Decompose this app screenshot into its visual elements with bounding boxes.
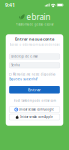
staticText: Endereço de e-mail (11, 55, 38, 58)
button[interactable]: Senha (9, 63, 60, 68)
staticText: Você também pode entrar com (13, 99, 55, 102)
staticText: Plataforma de gestão escolar (15, 23, 53, 26)
staticText: ebrain (26, 11, 50, 22)
staticText: 9:41 (5, 1, 15, 9)
staticText: Iniciar sessão com Google (19, 108, 54, 111)
button[interactable]: Esqueceu sua senha? (9, 77, 37, 81)
staticText: Esqueceu sua senha? (9, 77, 37, 81)
staticText: Iniciar sessão com Apple (20, 115, 53, 119)
staticText: Memorize-me neste dispositivo (13, 73, 56, 76)
staticText: Entrar na sua conta (15, 36, 54, 42)
staticText: Entrar (28, 87, 41, 92)
button[interactable]: Endereço de e-mail (9, 54, 60, 59)
button[interactable]: Iniciar sessão com Apple (9, 114, 60, 120)
button[interactable]: Iniciar sessão com Google (9, 106, 60, 112)
staticText: Senha (11, 63, 19, 67)
staticText: Acesse o sistema com suas credenciais (9, 43, 59, 46)
button[interactable]: Entrar (9, 86, 60, 93)
